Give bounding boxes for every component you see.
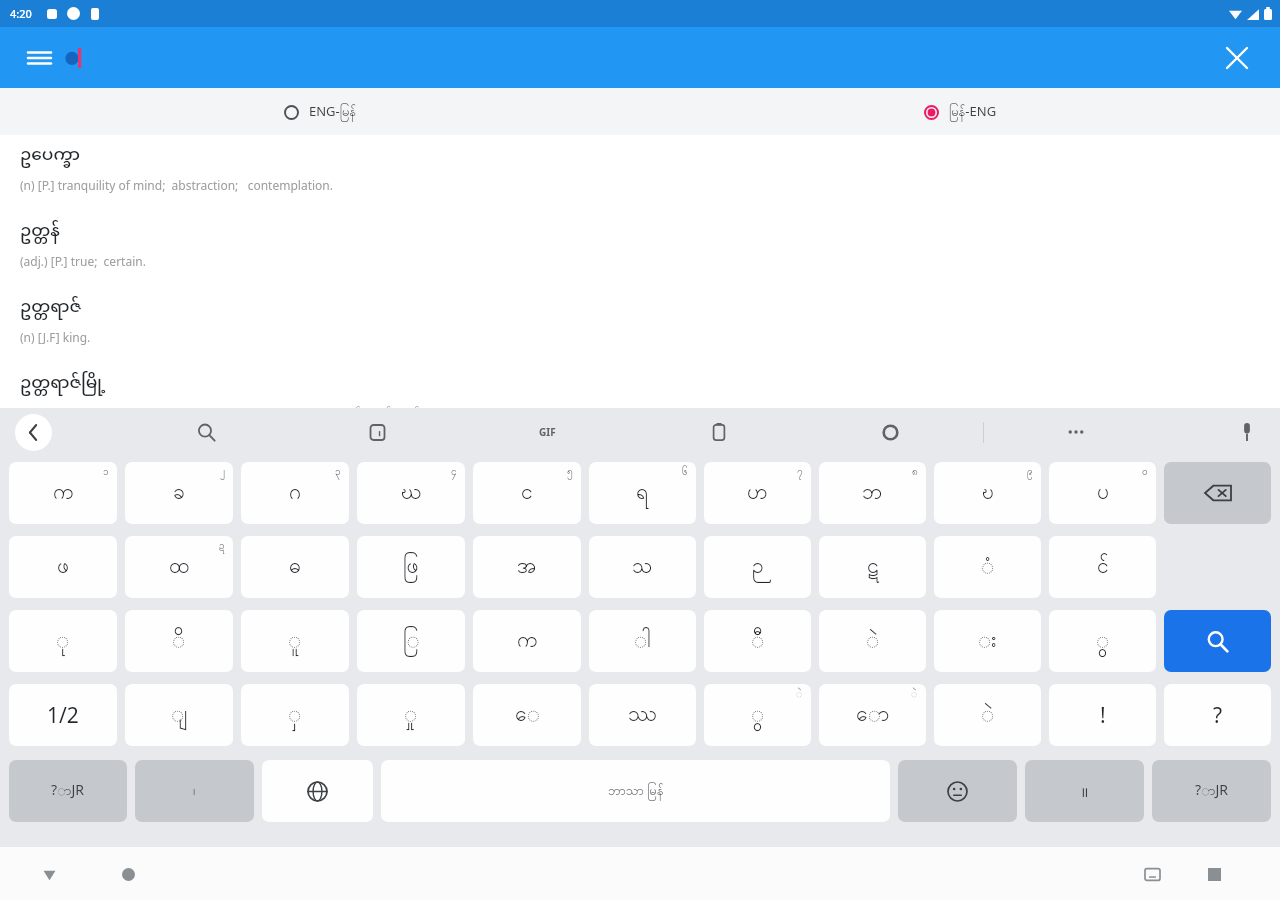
staticText: ၄ [451, 465, 457, 480]
button[interactable]: ွ [1049, 610, 1156, 672]
button[interactable]: ဉ [704, 536, 811, 598]
button[interactable]: Search [185, 411, 227, 453]
button[interactable]: Symbols [9, 760, 127, 822]
button[interactable]: ဂ [241, 462, 349, 524]
button[interactable]: 1/2 [9, 684, 117, 746]
staticText: င [521, 478, 533, 509]
button[interactable]: မြန်-ENG [640, 88, 1280, 135]
staticText: ၆ [682, 465, 688, 480]
button[interactable]: ေ [473, 684, 581, 746]
button[interactable]: Dictionary logo [56, 40, 92, 76]
button[interactable]: GIF [526, 411, 568, 453]
button[interactable]: ခ [125, 462, 233, 524]
staticText: ဂ [289, 478, 301, 509]
button[interactable]: ဥတ္တရာဇ် [20, 289, 1268, 345]
button[interactable]: ဘာသာ မြန် [381, 760, 890, 822]
button[interactable]: က [9, 462, 117, 524]
button[interactable]: Settings [869, 411, 911, 453]
staticText: 4:20 [10, 6, 32, 21]
button[interactable]: အ [473, 536, 581, 598]
button[interactable]: ျ [125, 684, 233, 746]
button[interactable]: ဟ [704, 462, 811, 524]
staticText: ၉ [1027, 465, 1033, 480]
staticText: ၀ [1142, 465, 1148, 480]
staticText: ဉ [752, 552, 764, 583]
button[interactable]: င [473, 462, 581, 524]
button[interactable]: Voice input [1226, 411, 1268, 453]
button[interactable]: ဖ [9, 536, 117, 598]
button[interactable]: ဃ [357, 462, 465, 524]
button[interactable]: ပ [1049, 462, 1156, 524]
button[interactable]: Sticker [356, 411, 398, 453]
button[interactable]: ှု [357, 684, 465, 746]
button[interactable]: ော [819, 684, 926, 746]
staticText: ီ [751, 626, 765, 657]
staticText: ဥတ္တန် [20, 213, 60, 250]
button[interactable]: က [473, 610, 581, 672]
button[interactable]: ဖြ [357, 536, 465, 598]
button[interactable]: ဋ [819, 536, 926, 598]
staticText: ဲ [911, 687, 918, 702]
button[interactable]: Home [110, 856, 146, 892]
button[interactable]: Hide keyboard [31, 856, 67, 892]
button[interactable]: ဎ [934, 462, 1041, 524]
staticText: က [517, 626, 538, 657]
staticText: ွ [751, 700, 765, 731]
button[interactable]: ိ [125, 610, 233, 672]
staticText: ဖြ [403, 552, 419, 583]
staticText: ဘာသာ မြန် [608, 781, 664, 801]
staticText: (n) [J.F] king. [20, 329, 91, 345]
button[interactable]: င် [1049, 536, 1156, 598]
button[interactable]: Change language [262, 760, 373, 822]
button[interactable]: း [934, 610, 1041, 672]
button[interactable]: ရ [589, 462, 696, 524]
staticText: ှ [288, 700, 302, 731]
staticText: (n) queen ruling in her own right; queen… [20, 405, 427, 408]
staticText: ၅ [567, 465, 573, 480]
button[interactable]: Section mark [1025, 760, 1144, 822]
button[interactable]: ွ [704, 684, 811, 746]
button[interactable]: ဥပေက္ခာ [20, 137, 1268, 193]
staticText: ၈ [912, 465, 918, 480]
staticText: ရ [636, 478, 649, 509]
button[interactable]: ဲ [819, 610, 926, 672]
button[interactable]: ထ [125, 536, 233, 598]
button[interactable]: ါ [589, 610, 696, 672]
button[interactable]: ဥတ္တရာဇ်မြို့ [20, 365, 1268, 408]
button[interactable]: ဲ [934, 684, 1041, 746]
button[interactable]: Delete [1164, 462, 1271, 524]
button[interactable]: ENG-မြန် [0, 88, 640, 135]
button[interactable]: More options [1055, 411, 1097, 453]
button[interactable]: Search [1164, 610, 1271, 672]
button[interactable]: More symbols [1152, 760, 1271, 822]
button[interactable]: Keyboard switcher [1134, 856, 1170, 892]
staticText: ါ [634, 626, 651, 657]
button[interactable]: Clipboard [698, 411, 740, 453]
button[interactable]: ီ [704, 610, 811, 672]
button[interactable]: ဘ [819, 462, 926, 524]
staticText: ဥတ္တရာဇ် [20, 289, 82, 326]
button[interactable]: ? [1164, 684, 1271, 746]
button[interactable]: ဓ [241, 536, 349, 598]
button[interactable]: ဥတ္တန် [20, 213, 1268, 269]
button[interactable]: ံ [934, 536, 1041, 598]
button[interactable]: Recent apps [1196, 856, 1232, 892]
staticText: ॥ [1080, 782, 1089, 801]
button[interactable]: ဿ [589, 684, 696, 746]
button[interactable]: ု [9, 610, 117, 672]
staticText: ထ [169, 552, 190, 583]
staticText: ! [1100, 701, 1106, 730]
staticText: 1/2 [47, 701, 79, 730]
button[interactable]: ! [1049, 684, 1156, 746]
button[interactable]: ြ [357, 610, 465, 672]
button[interactable]: သ [589, 536, 696, 598]
button[interactable]: ူ [241, 610, 349, 672]
button[interactable]: Close [1214, 35, 1260, 81]
staticText: ၃ [335, 465, 341, 480]
button[interactable]: Menu [18, 37, 60, 79]
staticText: ဲ [981, 700, 995, 731]
button[interactable]: ှ [241, 684, 349, 746]
button[interactable]: Emoji [898, 760, 1017, 822]
button[interactable]: Back [15, 414, 52, 451]
